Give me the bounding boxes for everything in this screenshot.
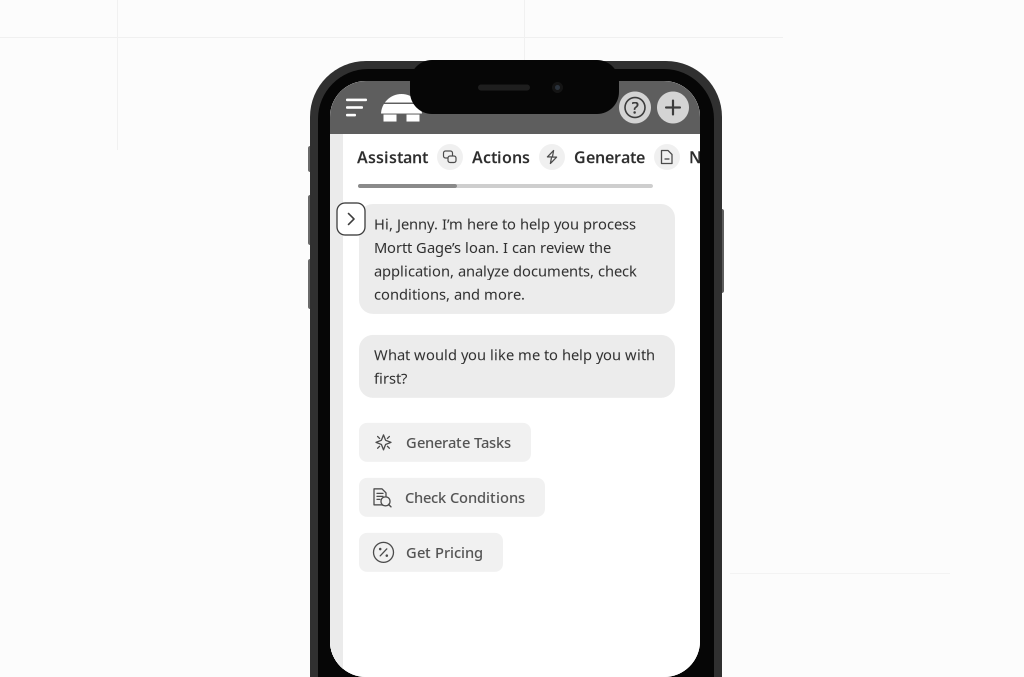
staticText: Actions [472, 146, 530, 168]
button[interactable]: Generate Tasks [359, 423, 531, 462]
button[interactable]: Actions [472, 146, 530, 168]
button[interactable]: Expand sidebar [336, 202, 366, 236]
staticText: Generate [574, 146, 645, 168]
button[interactable]: Quick actions [539, 144, 565, 170]
button[interactable]: Home [379, 87, 430, 127]
button[interactable]: Menu [334, 90, 379, 124]
button[interactable]: Help [616, 88, 654, 126]
staticText: Notes [689, 146, 735, 168]
button[interactable]: Assistant [357, 146, 428, 168]
button[interactable]: Conversations [437, 144, 463, 170]
staticText: ? [631, 97, 638, 118]
staticText: Generate Tasks [406, 433, 511, 452]
button[interactable]: Documents [654, 144, 680, 170]
button[interactable]: Check Conditions [359, 478, 545, 517]
staticText: Hi, Jenny. I’m here to help you process … [374, 214, 637, 304]
button[interactable]: New [654, 88, 692, 126]
button[interactable]: Get Pricing [359, 533, 503, 572]
staticText: Assistant [357, 146, 428, 168]
staticText: What would you like me to help you with … [374, 345, 655, 388]
staticText: Get Pricing [406, 543, 483, 562]
staticText: Check Conditions [405, 488, 525, 507]
button[interactable]: Generate [574, 146, 645, 168]
button[interactable]: Notes [689, 146, 735, 168]
